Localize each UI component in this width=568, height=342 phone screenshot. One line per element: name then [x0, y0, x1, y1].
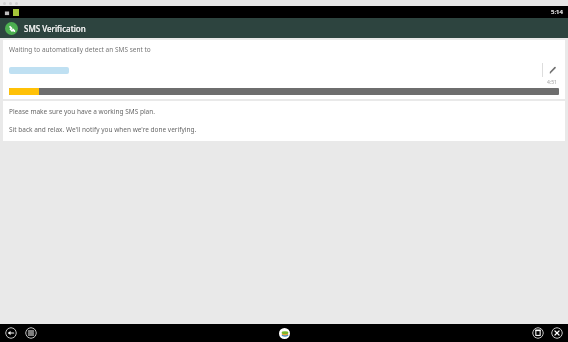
staticText: 5:14 [551, 8, 563, 16]
button[interactable]: Close [551, 327, 563, 339]
button[interactable]: Back [5, 327, 17, 339]
other: WhatsApp [5, 22, 18, 35]
button[interactable]: Edit phone number [543, 61, 561, 79]
staticText: Please make sure you have a working SMS … [9, 107, 155, 116]
staticText: Sit back and relax. We'll notify you whe… [9, 125, 197, 134]
button[interactable]: Rotate screen [532, 327, 544, 339]
button[interactable]: Home [279, 328, 290, 339]
button[interactable]: Menu [25, 327, 37, 339]
staticText: Waiting to automatically detect an SMS s… [9, 45, 151, 54]
staticText: 4:51 [547, 79, 557, 86]
staticText: SMS Verification [24, 23, 86, 34]
